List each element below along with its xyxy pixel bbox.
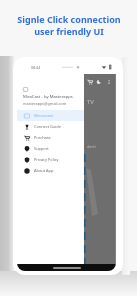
button[interactable]: Cart [87,79,93,85]
button[interactable]: Support [17,143,84,154]
staticText: Privacy Policy [34,157,59,162]
staticText: Support [34,146,49,151]
button[interactable]: More options [106,79,112,85]
button[interactable]: About App [17,165,84,176]
staticText: Connect Guide [34,124,61,129]
staticText: user friendly UI [34,25,104,37]
staticText: don't [87,144,96,149]
staticText: About App [34,168,54,173]
staticText: MiraCast - by Masterapps [23,94,73,100]
staticText: Purchase [34,135,51,140]
staticText: Mirrorcast [34,113,53,118]
button[interactable]: Connect Guide [17,121,84,132]
staticText: Signle Click connection [17,13,121,25]
button[interactable]: Mirrorcast [17,110,84,121]
button[interactable]: Privacy Policy [17,154,84,165]
staticText: 08:44 [31,65,41,70]
staticText: masterapps@gmail.com [23,101,67,106]
button[interactable]: Purchase [17,132,84,143]
staticText: TV [87,98,94,106]
button[interactable]: Dark mode [96,79,102,85]
